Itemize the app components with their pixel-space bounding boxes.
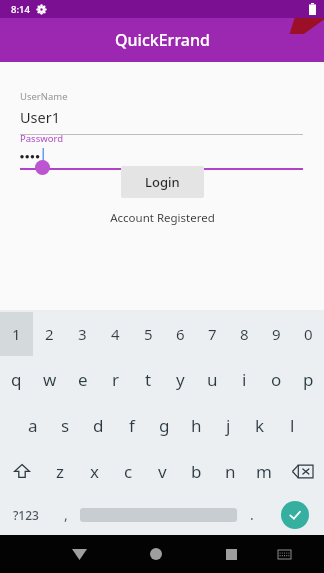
staticText: u (207, 368, 218, 391)
staticText: m (256, 460, 272, 483)
button[interactable]: Login (121, 166, 204, 198)
staticText: , (64, 505, 68, 524)
staticText: 6 (176, 324, 185, 344)
button[interactable]: 9 (260, 312, 292, 356)
button[interactable]: Space (80, 494, 237, 535)
button[interactable]: i (228, 356, 260, 402)
staticText: 7 (208, 324, 217, 344)
button[interactable]: m (247, 448, 281, 494)
button[interactable]: k (244, 402, 276, 448)
staticText: Login (145, 173, 180, 191)
button[interactable]: ?123 (0, 494, 51, 535)
button[interactable]: Backspace (281, 448, 324, 494)
staticText: j (226, 414, 231, 437)
staticText: k (255, 414, 265, 437)
button[interactable]: . (237, 494, 266, 535)
button[interactable]: t (132, 356, 164, 402)
staticText: x (90, 460, 99, 483)
staticText: y (176, 368, 185, 391)
button[interactable]: 2 (33, 312, 66, 356)
button[interactable]: UserName (20, 90, 303, 135)
staticText: d (93, 414, 104, 437)
button[interactable]: 3 (66, 312, 99, 356)
staticText: t (145, 368, 152, 391)
button[interactable]: h (180, 402, 212, 448)
staticText: n (225, 460, 236, 483)
staticText: Account Registered (110, 210, 215, 226)
button[interactable]: , (51, 494, 80, 535)
staticText: . (250, 505, 254, 524)
staticText: o (271, 368, 282, 391)
staticText: 1 (12, 324, 21, 344)
button[interactable]: d (82, 402, 115, 448)
staticText: 2 (45, 324, 54, 344)
staticText: g (159, 414, 170, 437)
staticText: UserName (20, 90, 68, 103)
button[interactable]: 8 (228, 312, 260, 356)
staticText: 8:14 (11, 3, 30, 16)
staticText: z (56, 460, 64, 483)
staticText: i (242, 368, 247, 391)
button[interactable]: e (66, 356, 99, 402)
button[interactable]: r (99, 356, 132, 402)
staticText: h (191, 414, 202, 437)
button[interactable]: 0 (292, 312, 324, 356)
staticText: p (303, 368, 314, 391)
button[interactable]: q (0, 356, 33, 402)
staticText: QuickErrand (115, 29, 210, 51)
button[interactable]: o (260, 356, 292, 402)
button[interactable]: p (292, 356, 324, 402)
staticText: 8 (240, 324, 249, 344)
button[interactable]: z (43, 448, 77, 494)
staticText: 0 (304, 324, 313, 344)
staticText: 9 (272, 324, 281, 344)
staticText: a (28, 414, 38, 437)
staticText: r (112, 368, 120, 391)
button[interactable]: f (115, 402, 148, 448)
staticText: ?123 (13, 507, 39, 523)
staticText: q (11, 368, 22, 391)
button[interactable]: Enter (281, 501, 309, 529)
staticText: w (43, 368, 57, 391)
button[interactable]: a (16, 402, 49, 448)
button[interactable]: c (111, 448, 145, 494)
button[interactable]: 6 (164, 312, 196, 356)
button[interactable]: Recent apps (212, 535, 251, 573)
button[interactable]: u (196, 356, 228, 402)
staticText: v (158, 460, 167, 483)
button[interactable]: Switch keyboard (265, 535, 304, 573)
button[interactable]: x (77, 448, 111, 494)
button[interactable]: 4 (99, 312, 132, 356)
staticText: 5 (144, 324, 153, 344)
button[interactable]: 1 (0, 312, 33, 356)
button[interactable]: n (213, 448, 247, 494)
button[interactable]: Home (136, 535, 175, 573)
staticText: f (129, 414, 135, 437)
button[interactable]: v (145, 448, 179, 494)
button[interactable]: Password (20, 132, 303, 170)
staticText: User1 (20, 107, 61, 127)
button[interactable]: j (212, 402, 244, 448)
button[interactable]: 7 (196, 312, 228, 356)
button[interactable]: 5 (132, 312, 164, 356)
button[interactable]: y (164, 356, 196, 402)
button[interactable]: Back (60, 535, 99, 573)
staticText: s (61, 414, 70, 437)
staticText: 3 (78, 324, 87, 344)
staticText: l (290, 414, 295, 437)
button[interactable]: b (179, 448, 213, 494)
button[interactable]: l (276, 402, 308, 448)
button[interactable]: Shift (0, 448, 43, 494)
button[interactable]: w (33, 356, 66, 402)
staticText: e (78, 368, 88, 391)
button[interactable]: g (148, 402, 180, 448)
staticText: c (124, 460, 133, 483)
staticText: 4 (111, 324, 120, 344)
button[interactable]: s (49, 402, 82, 448)
staticText: b (191, 460, 202, 483)
staticText: Password (20, 132, 63, 145)
